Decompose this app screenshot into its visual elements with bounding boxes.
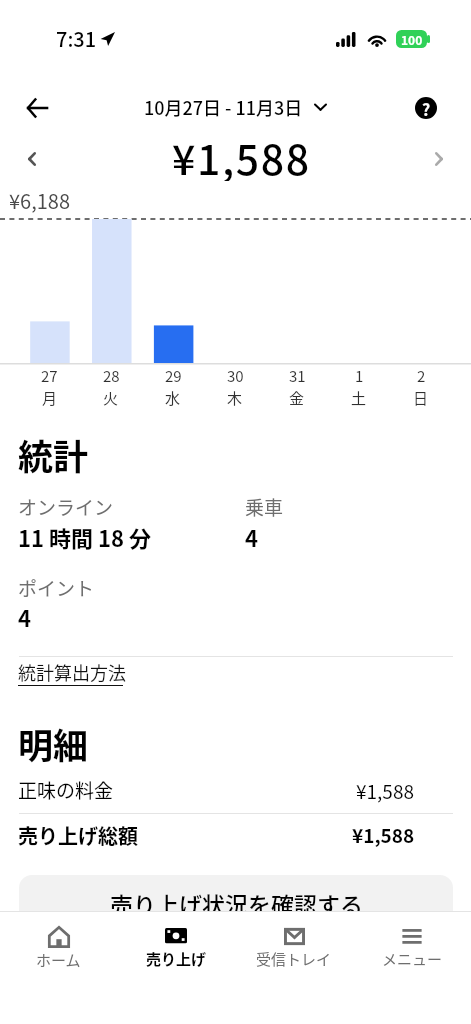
staticText: ¥6,188 [9,186,71,215]
staticText: 水 [165,387,181,409]
button[interactable]: Next week [422,142,456,176]
button[interactable]: 10月27日 - 11月3日 [140,90,331,124]
staticText: ¥1,588 [356,777,415,805]
button[interactable]: 受信トレイ [235,912,353,1024]
button[interactable]: Help [408,90,444,126]
staticText: 100 [401,31,423,48]
staticText: メニュー [382,948,443,970]
button[interactable]: 統計算出方法 [18,659,126,686]
staticText: 木 [227,387,243,409]
button[interactable]: メニュー [353,912,471,1024]
staticText: 30 [227,365,244,387]
staticText: 乗車 [245,493,284,521]
staticText: 11 時間 18 分 [18,521,151,553]
staticText: 受信トレイ [256,948,332,970]
button[interactable]: 売り上げ状況を確認する [19,875,453,939]
staticText: 2 [417,365,426,387]
staticText: 27 [41,365,58,387]
staticText: ホーム [36,949,81,971]
staticText: 明細 [18,718,89,769]
staticText: ? [422,97,431,119]
staticText: 金 [289,387,305,409]
staticText: 4 [18,601,31,633]
button[interactable]: ホーム [0,912,117,1024]
button[interactable]: Back [16,87,58,129]
staticText: 統計 [18,429,89,480]
staticText: 4 [245,521,258,553]
staticText: 10月27日 - 11月3日 [144,94,303,120]
staticText: 土 [351,387,367,409]
staticText: 29 [165,365,182,387]
button[interactable]: 売り上げ [117,912,235,1024]
staticText: 売り上げ [146,948,207,970]
staticText: オンライン [18,493,114,521]
staticText: ¥1,588 [352,821,415,849]
button[interactable]: Previous week [15,142,49,176]
staticText: 31 [289,365,306,387]
staticText: 売り上げ総額 [18,821,138,850]
staticText: 統計算出方法 [18,659,126,685]
staticText: 正味の料金 [18,776,114,804]
staticText: 日 [413,387,429,409]
staticText: 売り上げ状況を確認する [110,887,363,920]
staticText: 28 [103,365,120,387]
staticText: ¥1,588 [172,127,311,181]
staticText: ポイント [18,574,95,602]
staticText: 火 [103,387,119,409]
staticText: 月 [42,387,58,409]
staticText: 1 [355,365,364,387]
staticText: 7:31 [56,24,97,53]
